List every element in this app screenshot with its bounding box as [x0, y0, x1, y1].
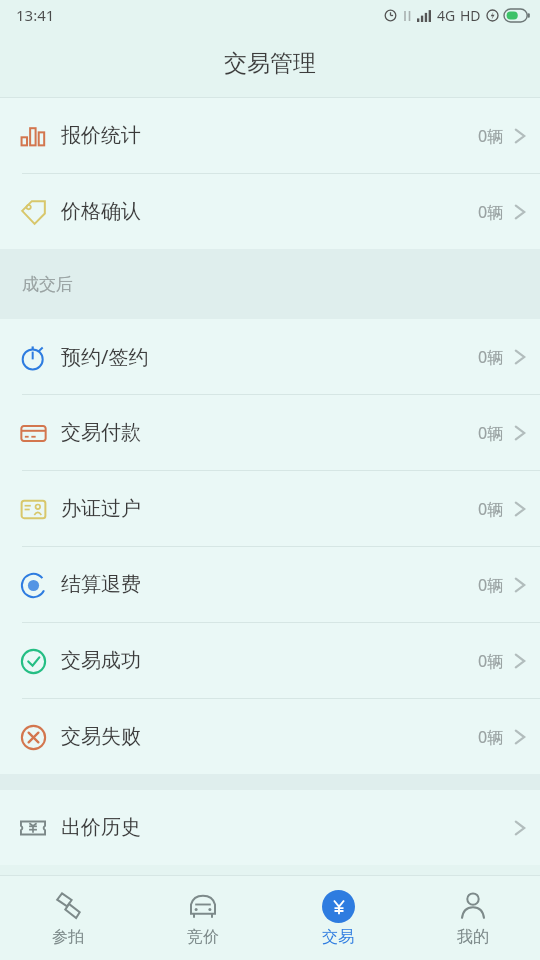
- button[interactable]: 交易成功: [0, 623, 540, 699]
- button[interactable]: 办证过户: [0, 471, 540, 547]
- button[interactable]: 报价统计: [0, 98, 540, 174]
- button[interactable]: 竞价: [135, 876, 270, 960]
- staticText: 交易: [322, 927, 354, 947]
- staticText: 0辆: [478, 574, 504, 596]
- staticText: HD: [460, 6, 481, 25]
- staticText: 0辆: [478, 125, 504, 147]
- button[interactable]: 价格确认: [0, 174, 540, 249]
- staticText: 预约/签约: [61, 343, 149, 370]
- button[interactable]: 结算退费: [0, 547, 540, 623]
- staticText: 价格确认: [61, 199, 141, 224]
- staticText: 竞价: [187, 927, 219, 947]
- staticText: 成交后: [22, 274, 73, 295]
- staticText: 我的: [457, 927, 489, 947]
- staticText: 办证过户: [61, 496, 141, 521]
- button[interactable]: 交易付款: [0, 395, 540, 471]
- staticText: 交易成功: [61, 648, 141, 673]
- staticText: 0辆: [478, 346, 504, 368]
- button[interactable]: 交易: [270, 876, 405, 960]
- staticText: 交易失败: [61, 724, 141, 749]
- staticText: 0辆: [478, 498, 504, 520]
- staticText: 13:41: [16, 5, 55, 25]
- staticText: 交易付款: [61, 420, 141, 445]
- staticText: 结算退费: [61, 572, 141, 597]
- button[interactable]: 出价历史: [0, 790, 540, 865]
- staticText: 4G: [437, 6, 456, 25]
- button[interactable]: 预约/签约: [0, 319, 540, 395]
- staticText: 0辆: [478, 201, 504, 223]
- staticText: 参拍: [52, 927, 84, 947]
- staticText: 0辆: [478, 726, 504, 748]
- staticText: 交易管理: [224, 49, 316, 78]
- staticText: 报价统计: [61, 123, 141, 148]
- staticText: 0辆: [478, 650, 504, 672]
- staticText: 出价历史: [61, 815, 141, 840]
- button[interactable]: 交易失败: [0, 699, 540, 774]
- button[interactable]: 我的: [405, 876, 540, 960]
- staticText: 0辆: [478, 422, 504, 444]
- button[interactable]: 参拍: [0, 876, 135, 960]
